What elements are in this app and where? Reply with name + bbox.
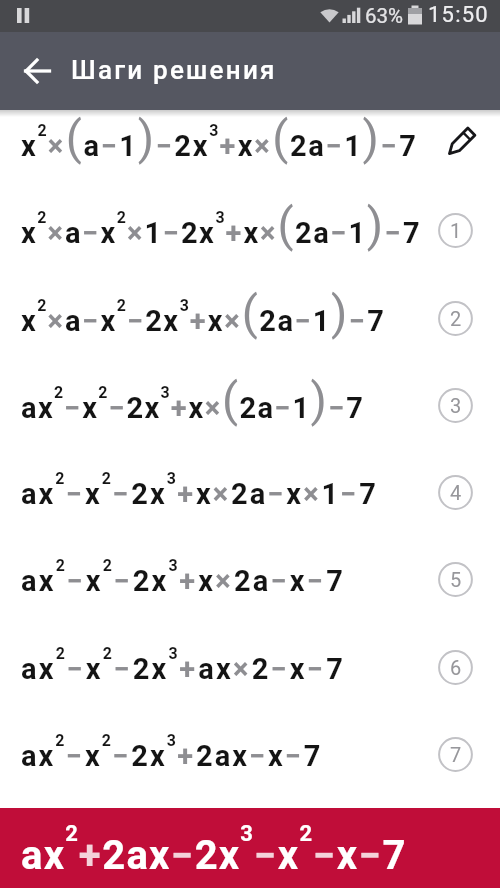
staticText: 2 [450,307,462,330]
button[interactable]: ax2−x2−2x3+ax×2−x−7 [0,634,500,721]
button[interactable]: ax2−x2−2x3+2ax−x−7 [0,721,500,808]
button[interactable] [439,124,479,164]
staticText: x2×(a−1)−2x3+x×(2a−1)−7 [21,110,418,165]
staticText: 7 [450,743,462,766]
staticText: x2×a−x2×1−2x3+x×(2a−1)−7 [21,197,422,252]
staticText: ax2−x2−2x3+x×2a−x−7 [21,556,346,598]
staticText: 6 [450,656,462,679]
button[interactable]: x2×a−x2×1−2x3+x×(2a−1)−7 [0,197,500,285]
button[interactable] [15,49,59,93]
staticText: ax2−x2−2x3+x×(2a−1)−7 [21,372,365,427]
button[interactable]: x2×a−x2−2x3+x×(2a−1)−7 [0,285,500,372]
staticText: 3 [450,394,462,417]
staticText: ax2+2ax−2x3−x2−x−7 [21,821,407,879]
staticText: 63% [365,4,404,28]
button[interactable]: x2×(a−1)−2x3+x×(2a−1)−7 [0,110,500,197]
staticText: Шаги решения [71,55,277,85]
button[interactable]: ax2+2ax−2x3−x2−x−7 [0,808,500,888]
button[interactable]: ax2−x2−2x3+x×2a−x×1−7 [0,459,500,546]
staticText: 4 [450,481,462,504]
staticText: ax2−x2−2x3+ax×2−x−7 [21,644,346,686]
button[interactable]: ax2−x2−2x3+x×2a−x−7 [0,546,500,634]
button[interactable]: ax2−x2−2x3+x×(2a−1)−7 [0,372,500,459]
staticText: ax2−x2−2x3+2ax−x−7 [21,731,323,773]
staticText: x2×a−x2−2x3+x×(2a−1)−7 [21,285,386,340]
staticText: ax2−x2−2x3+x×2a−x×1−7 [21,469,378,511]
staticText: 15:50 [428,2,489,28]
staticText: 5 [450,568,462,591]
staticText: 1 [450,219,462,242]
